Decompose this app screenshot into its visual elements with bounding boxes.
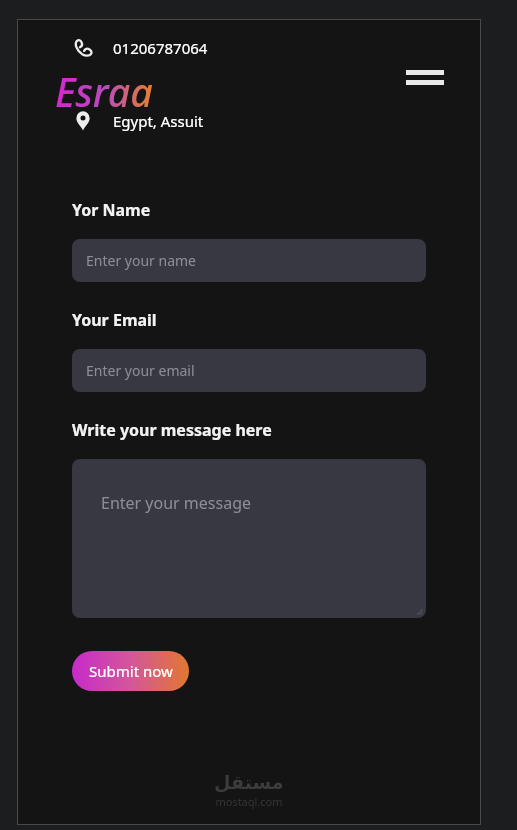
staticText: مستقل — [214, 771, 284, 793]
staticText: Egypt, Assuit — [113, 111, 204, 131]
button[interactable]: Enter your email — [72, 349, 426, 392]
button[interactable]: Enter your message — [72, 459, 426, 618]
staticText: Your Email — [72, 309, 157, 331]
button[interactable]: Open menu — [406, 65, 444, 95]
staticText: Enter your message — [101, 492, 252, 514]
staticText: Esraa — [55, 65, 153, 118]
staticText: Enter your email — [86, 361, 195, 380]
staticText: Enter your name — [86, 251, 196, 270]
staticText: mostaql.com — [215, 794, 283, 809]
other: Location — [72, 110, 94, 132]
staticText: Write your message here — [72, 419, 272, 441]
button[interactable]: Enter your name — [72, 239, 426, 282]
button[interactable]: Submit now — [72, 651, 189, 691]
other: Call phone number — [72, 37, 94, 59]
staticText: Submit now — [89, 661, 173, 681]
button[interactable]: Location — [72, 110, 204, 132]
button[interactable]: Call phone number — [72, 37, 208, 59]
staticText: Yor Name — [72, 199, 151, 221]
staticText: 01206787064 — [113, 38, 208, 58]
